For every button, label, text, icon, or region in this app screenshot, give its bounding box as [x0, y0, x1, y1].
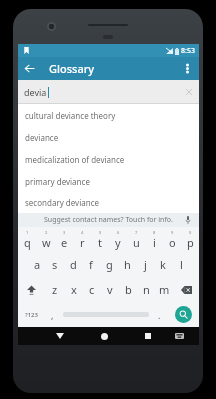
staticText: primary deviance: [25, 176, 90, 187]
button[interactable]: .: [151, 302, 167, 327]
button[interactable]: medicalization of deviance: [18, 148, 199, 170]
button[interactable]: b: [119, 277, 137, 302]
button[interactable]: 9: [163, 227, 181, 252]
button[interactable]: n: [137, 277, 155, 302]
staticText: u: [133, 235, 140, 250]
button[interactable]: g: [100, 252, 118, 277]
button[interactable]: j: [136, 252, 154, 277]
button[interactable]: 1: [18, 227, 37, 252]
button[interactable]: ,: [44, 302, 60, 327]
staticText: z: [52, 282, 58, 297]
button[interactable]: k: [154, 252, 172, 277]
staticText: 8:53: [181, 46, 195, 56]
button[interactable]: f: [82, 252, 100, 277]
button[interactable]: More options: [176, 57, 199, 80]
button[interactable]: m: [155, 277, 173, 302]
staticText: deviance: [25, 132, 59, 143]
staticText: 5: [99, 230, 102, 235]
button[interactable]: c: [83, 277, 101, 302]
button[interactable]: Voice input: [183, 215, 193, 225]
staticText: y: [115, 235, 121, 250]
button[interactable]: a: [28, 252, 46, 277]
button[interactable]: 0: [181, 227, 199, 252]
staticText: secondary deviance: [25, 197, 100, 208]
staticText: 3: [63, 230, 66, 235]
staticText: Glossary: [49, 61, 95, 76]
button[interactable]: Switch keyboard: [166, 327, 192, 345]
button[interactable]: x: [64, 277, 83, 302]
button[interactable]: 4: [73, 227, 91, 252]
button[interactable]: 6: [109, 227, 127, 252]
staticText: 9: [171, 230, 174, 235]
staticText: k: [160, 257, 166, 272]
staticText: l: [180, 257, 183, 272]
staticText: ,: [51, 309, 54, 321]
staticText: 1: [26, 230, 29, 235]
staticText: r: [80, 235, 85, 250]
staticText: a: [34, 257, 41, 272]
staticText: v: [107, 282, 113, 297]
button[interactable]: h: [118, 252, 136, 277]
staticText: w: [42, 235, 51, 250]
button[interactable]: cultural deviance theory: [18, 104, 199, 126]
button[interactable]: Home: [91, 327, 117, 345]
button[interactable]: v: [101, 277, 119, 302]
staticText: i: [153, 235, 156, 250]
button[interactable]: Suggest contact names? Touch for info.: [18, 213, 199, 227]
staticText: Suggest contact names? Touch for info.: [44, 215, 173, 225]
button[interactable]: ?123: [18, 302, 44, 327]
staticText: 8: [153, 230, 156, 235]
staticText: e: [61, 235, 68, 250]
staticText: 4: [81, 230, 84, 235]
button[interactable]: Recent apps: [135, 327, 161, 345]
button[interactable]: s: [46, 252, 64, 277]
button[interactable]: l: [172, 252, 190, 277]
button[interactable]: Shift: [18, 277, 45, 302]
button[interactable]: d: [64, 252, 82, 277]
button[interactable]: 8: [145, 227, 163, 252]
staticText: p: [187, 235, 194, 250]
staticText: q: [24, 235, 31, 250]
button[interactable]: 3: [55, 227, 73, 252]
button[interactable]: secondary deviance: [18, 192, 199, 213]
staticText: j: [144, 257, 147, 272]
staticText: t: [98, 235, 102, 250]
staticText: g: [106, 257, 113, 272]
staticText: f: [89, 257, 93, 272]
staticText: o: [169, 235, 176, 250]
button[interactable]: 7: [127, 227, 145, 252]
staticText: 2: [45, 230, 48, 235]
staticText: x: [71, 282, 77, 297]
button[interactable]: Clear query: [184, 87, 194, 97]
staticText: 7: [135, 230, 138, 235]
staticText: c: [89, 282, 95, 297]
button[interactable]: Delete: [173, 277, 199, 302]
staticText: 0: [189, 230, 192, 235]
button[interactable]: Hide keyboard: [47, 327, 73, 345]
staticText: cultural deviance theory: [25, 110, 116, 121]
staticText: b: [125, 282, 132, 297]
button[interactable]: 5: [91, 227, 109, 252]
staticText: 6: [117, 230, 120, 235]
staticText: m: [159, 282, 170, 297]
button[interactable]: Space: [60, 302, 151, 327]
staticText: .: [158, 309, 161, 321]
staticText: ?123: [25, 311, 38, 319]
button[interactable]: devia: [18, 80, 199, 104]
staticText: h: [124, 257, 131, 272]
button[interactable]: Search: [175, 306, 192, 323]
button[interactable]: z: [45, 277, 64, 302]
staticText: s: [52, 257, 58, 272]
staticText: devia: [24, 86, 47, 98]
staticText: medicalization of deviance: [25, 154, 125, 165]
staticText: n: [143, 282, 150, 297]
staticText: d: [70, 257, 77, 272]
button[interactable]: primary deviance: [18, 170, 199, 192]
button[interactable]: 2: [37, 227, 55, 252]
button[interactable]: deviance: [18, 126, 199, 148]
button[interactable]: Navigate up: [18, 57, 41, 80]
